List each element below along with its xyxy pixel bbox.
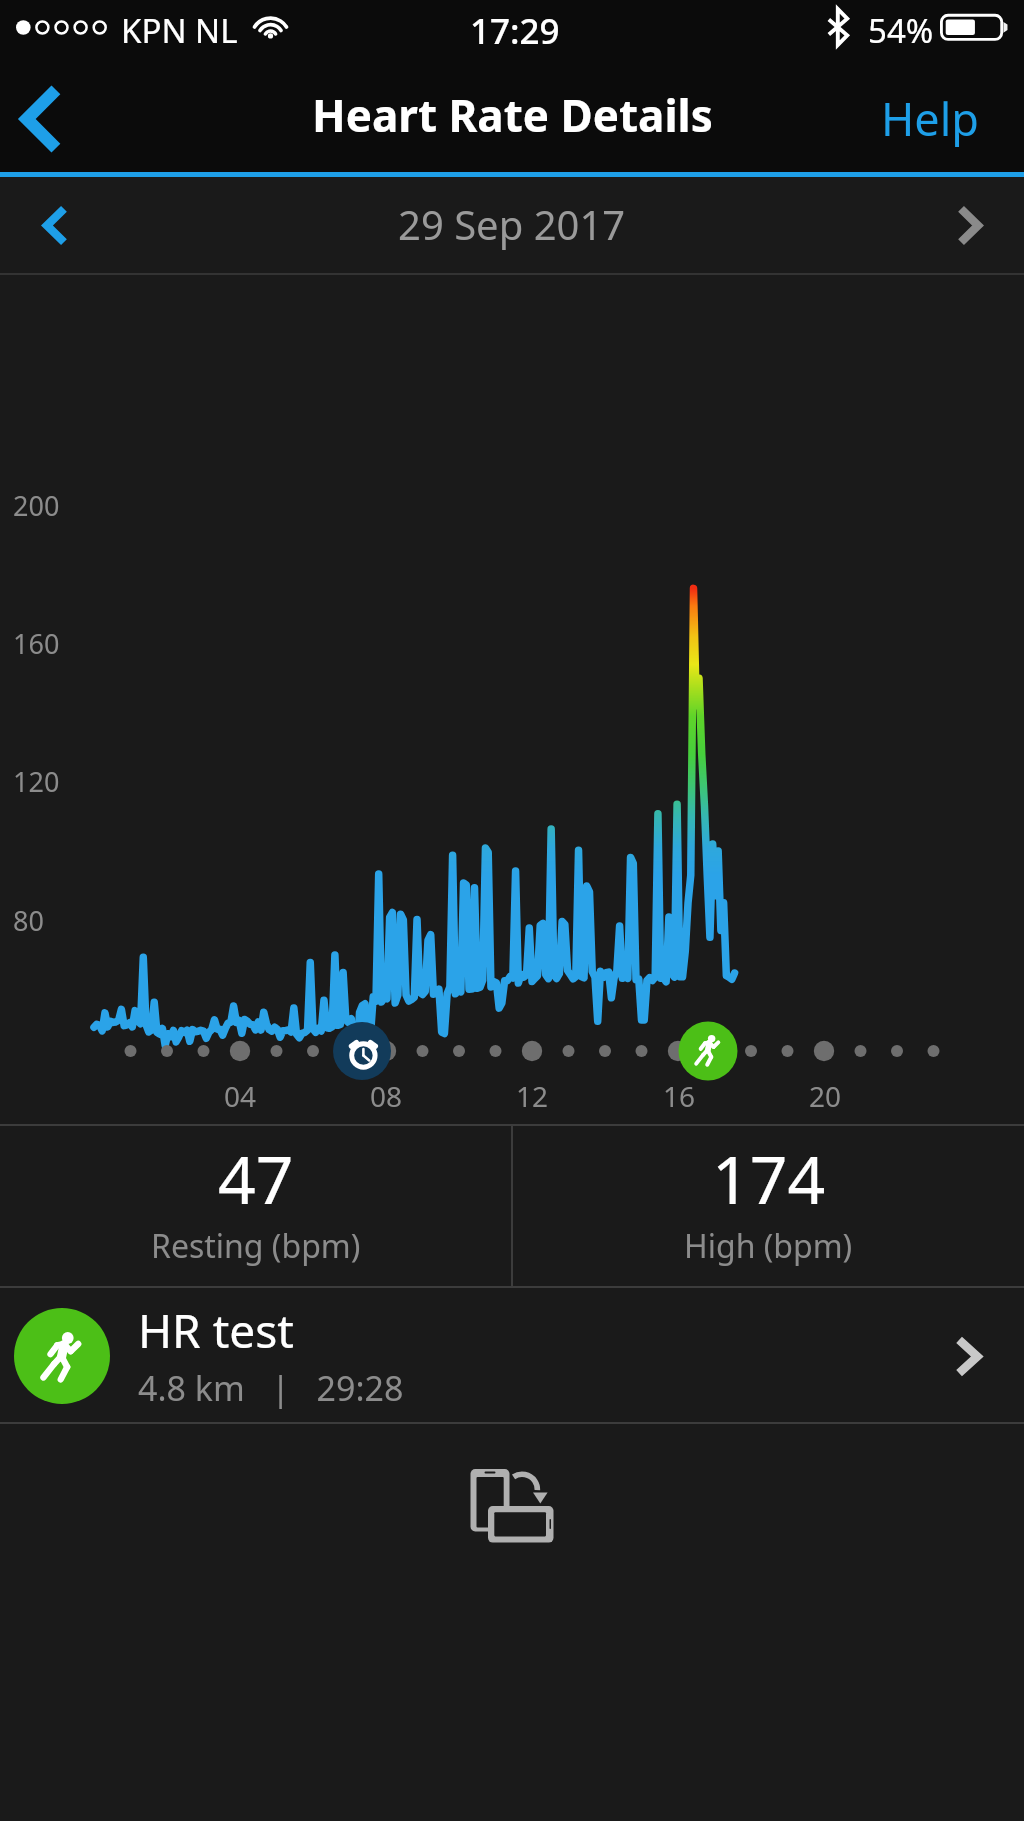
staticText: KPN NL — [121, 8, 238, 53]
button[interactable]: 47 — [0, 1124, 511, 1288]
staticText: 54% — [868, 8, 934, 53]
button[interactable]: 174 — [513, 1124, 1024, 1288]
button[interactable]: Previous day — [0, 177, 112, 275]
button[interactable]: Back — [0, 60, 100, 177]
staticText: 17:29 — [470, 7, 560, 55]
staticText: Heart Rate Details — [312, 85, 713, 145]
staticText: 160 — [13, 625, 60, 662]
button[interactable]: HR test — [0, 1288, 1024, 1424]
staticText: Help — [881, 88, 980, 149]
staticText: HR test — [138, 1299, 294, 1362]
button[interactable]: Help — [851, 60, 1024, 177]
staticText: 29 Sep 2017 — [398, 197, 626, 251]
staticText: 120 — [13, 763, 60, 800]
staticText: 12 — [516, 1077, 549, 1115]
staticText: 16 — [663, 1077, 696, 1115]
staticText: 80 — [13, 902, 44, 939]
staticText: 20 — [809, 1077, 842, 1115]
button[interactable]: Next day — [912, 177, 1024, 275]
staticText: 174 — [712, 1133, 826, 1223]
staticText: 47 — [218, 1133, 294, 1223]
staticText: High (bpm) — [684, 1224, 853, 1268]
staticText: Resting (bpm) — [151, 1224, 361, 1268]
staticText: 4.8 km | 29:28 — [138, 1365, 404, 1411]
staticText: 200 — [13, 487, 60, 524]
staticText: 08 — [370, 1077, 403, 1115]
staticText: 04 — [224, 1077, 257, 1115]
